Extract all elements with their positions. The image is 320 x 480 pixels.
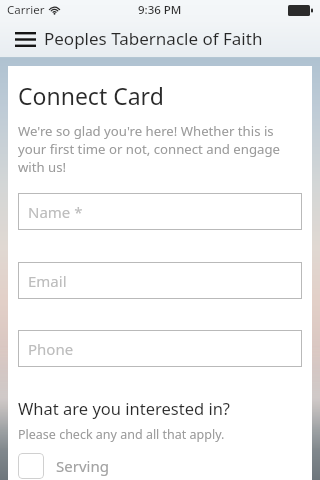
staticText: Phone [28,339,74,359]
button[interactable]: Phone [18,330,302,367]
staticText: What are you interested in? [18,397,230,419]
staticText: 9:36 PM [138,2,182,18]
button[interactable]: Name * [18,193,302,230]
staticText: Email [28,271,67,291]
staticText: Name * [28,202,83,222]
staticText: Serving [56,456,109,476]
button[interactable]: Serving [18,451,312,480]
button[interactable]: Menu [10,25,40,53]
staticText: Carrier [7,2,45,18]
button[interactable]: Email [18,262,302,299]
staticText: Please check any and all that apply. [18,426,225,443]
staticText: Peoples Tabernacle of Faith [44,27,263,50]
staticText: We're so glad you're here! Whether this … [18,122,302,176]
staticText: Connect Card [18,80,164,111]
